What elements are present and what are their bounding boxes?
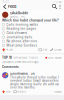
- staticText: Reply: [17, 90, 25, 93]
- staticText: Updated a few minutes ago: [2, 60, 39, 64]
- staticText: 4.2k: [6, 48, 12, 51]
- staticText: Journaling daily: [6, 35, 32, 39]
- button[interactable]: Search: [52, 4, 57, 9]
- staticText: Cold showers: [6, 31, 27, 35]
- staticText: 912: [6, 90, 11, 93]
- staticText: Reading ten pages: [6, 27, 36, 30]
- staticText: TOP 10: [2, 56, 12, 59]
- staticText: Meal prep Sundays: [6, 44, 37, 47]
- staticText: This whole thread is the nudge I needed …: [10, 76, 59, 89]
- staticText: OPINIONS TODAY: [13, 56, 38, 59]
- button[interactable]: No phone after nine: [2, 39, 62, 43]
- staticText: 318: [43, 48, 48, 51]
- button[interactable]: Reply: [13, 90, 25, 93]
- button[interactable]: Feed: [1, 4, 17, 9]
- button[interactable]: LIVE NOW: [45, 56, 62, 59]
- staticText: 9:41: [2, 0, 8, 4]
- staticText: r/AskReddit: [10, 11, 28, 15]
- button[interactable]: Journaling daily: [2, 35, 62, 39]
- staticText: u/mira_ · 4h: [10, 15, 25, 18]
- staticText: Award: [54, 90, 62, 93]
- staticText: LIVE NOW: [48, 56, 62, 59]
- staticText: Early morning walks: [6, 23, 38, 26]
- staticText: ◍: [56, 1, 58, 3]
- staticText: Comments: [2, 65, 19, 69]
- button[interactable]: Share: [50, 48, 62, 51]
- staticText: Which tiny habit changed your life?: [2, 18, 59, 22]
- staticText: u/northwind · 2h: [10, 72, 35, 75]
- button[interactable]: 4.2k: [2, 48, 12, 51]
- staticText: ıl: [54, 0, 56, 4]
- staticText: Feed: [8, 4, 16, 9]
- button[interactable]: More options: [57, 4, 62, 9]
- button[interactable]: Meal prep Sundays: [2, 43, 62, 47]
- button[interactable]: 318: [39, 48, 48, 51]
- button[interactable]: Reading ten pages: [2, 27, 62, 31]
- button[interactable]: Award: [54, 90, 62, 93]
- button[interactable]: Cold showers: [2, 31, 62, 35]
- button[interactable]: Early morning walks: [2, 23, 62, 27]
- staticText: Share: [54, 48, 62, 51]
- staticText: No phone after nine: [6, 39, 37, 43]
- button[interactable]: 912: [2, 90, 11, 93]
